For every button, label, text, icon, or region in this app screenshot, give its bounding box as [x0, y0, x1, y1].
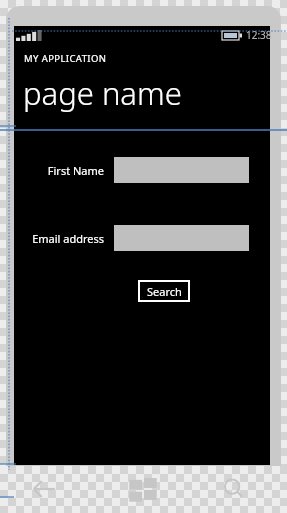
button[interactable]: Search [138, 280, 190, 302]
staticText: MY APPLICATION [24, 52, 107, 65]
staticText: page name [23, 72, 182, 114]
staticText: First Name [14, 163, 104, 178]
button[interactable]: Search [218, 477, 250, 501]
staticText: 12:38 [246, 28, 272, 42]
staticText: Email address [14, 231, 104, 246]
button[interactable]: Start [127, 476, 159, 502]
staticText: Search [147, 284, 182, 299]
button[interactable]: Back [28, 477, 60, 501]
